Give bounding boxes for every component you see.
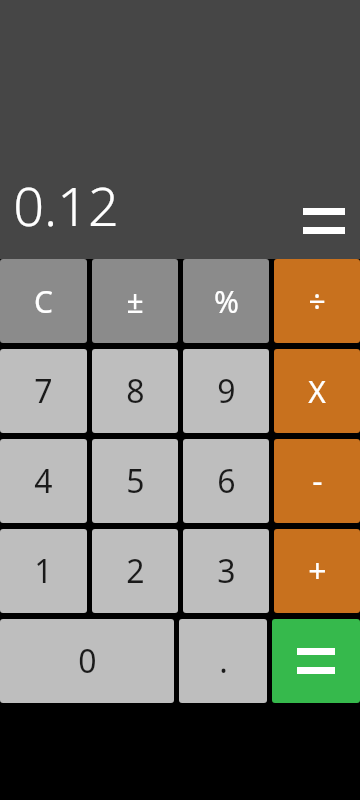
button[interactable]: 4	[0, 439, 87, 523]
staticText: 9	[217, 369, 236, 413]
button[interactable]: 3	[183, 529, 269, 613]
button[interactable]: Equals	[272, 619, 360, 703]
button[interactable]: 0	[0, 619, 174, 703]
button[interactable]: 7	[0, 349, 87, 433]
staticText: 5	[126, 459, 145, 503]
staticText: 0	[78, 639, 97, 683]
staticText: X	[308, 371, 326, 412]
staticText: 1	[34, 549, 53, 593]
staticText: C	[34, 281, 53, 322]
button[interactable]: .	[179, 619, 267, 703]
button[interactable]: 5	[92, 439, 178, 523]
button[interactable]: 8	[92, 349, 178, 433]
button[interactable]: C	[0, 259, 87, 343]
staticText: 7	[34, 369, 53, 413]
staticText: ÷	[308, 281, 326, 322]
button[interactable]: %	[183, 259, 269, 343]
staticText: +	[308, 549, 327, 593]
staticText: 3	[217, 549, 236, 593]
staticText: 8	[126, 369, 145, 413]
button[interactable]: 1	[0, 529, 87, 613]
staticText: 6	[217, 459, 236, 503]
button[interactable]: 2	[92, 529, 178, 613]
button[interactable]: X	[274, 349, 360, 433]
staticText: -	[312, 459, 323, 503]
staticText: ±	[126, 281, 144, 322]
button[interactable]: +	[274, 529, 360, 613]
button[interactable]: 9	[183, 349, 269, 433]
other: Equals	[303, 205, 345, 237]
staticText: %	[214, 281, 239, 322]
button[interactable]: 6	[183, 439, 269, 523]
staticText: .	[219, 639, 228, 683]
button[interactable]: -	[274, 439, 360, 523]
button[interactable]: ±	[92, 259, 178, 343]
staticText: 0.12	[13, 168, 119, 242]
staticText: 4	[34, 459, 53, 503]
button[interactable]: ÷	[274, 259, 360, 343]
staticText: 2	[126, 549, 145, 593]
